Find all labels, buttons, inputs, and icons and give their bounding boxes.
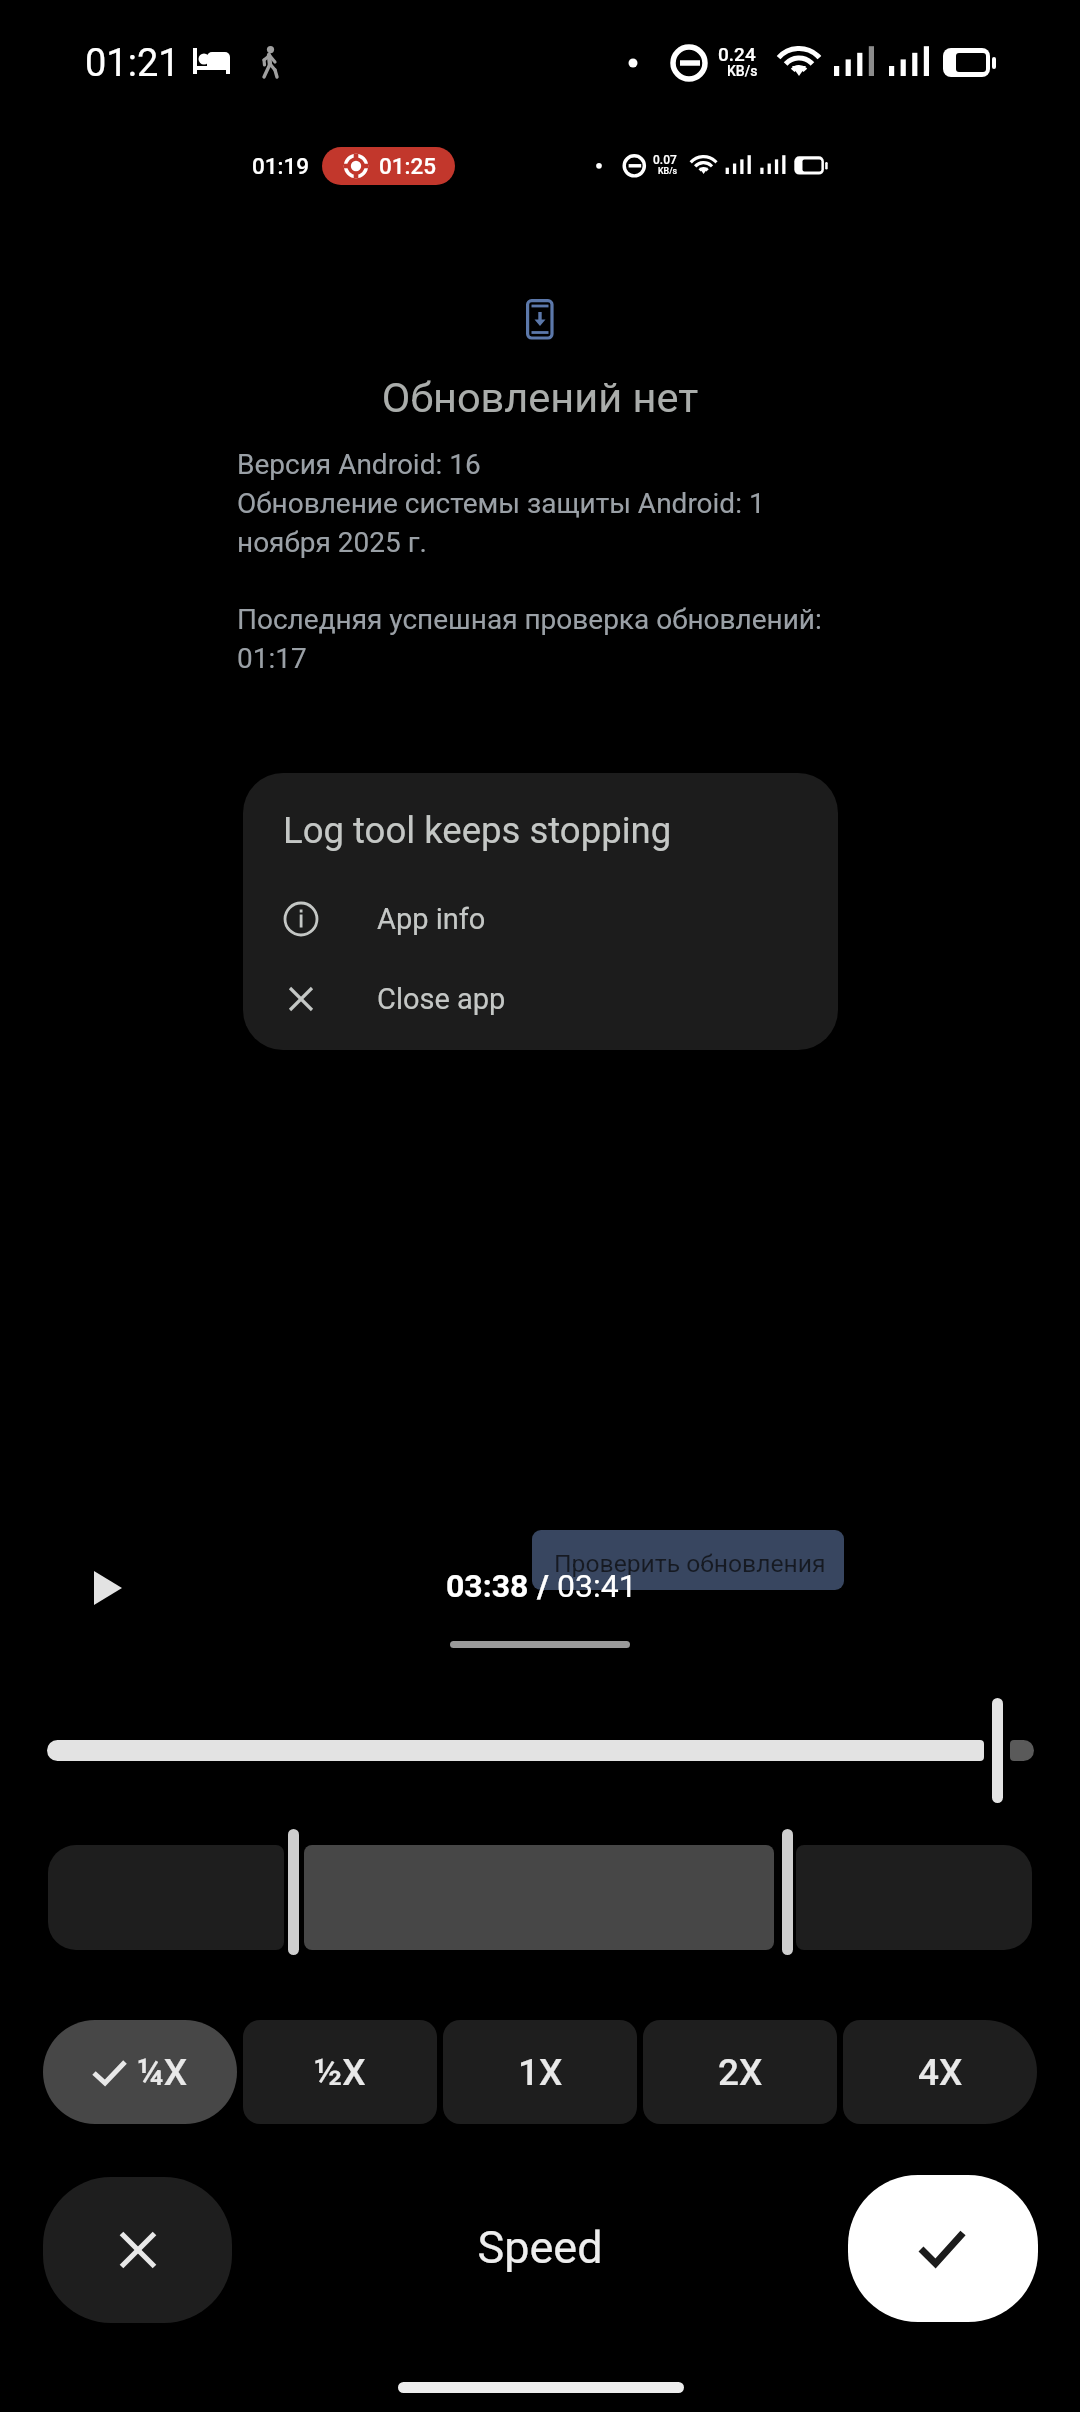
staticText: Log tool keeps stopping bbox=[283, 809, 672, 852]
button[interactable]: Clip head bbox=[48, 1845, 284, 1950]
button[interactable]: 2X bbox=[643, 2020, 837, 2124]
button[interactable]: Done bbox=[848, 2175, 1038, 2322]
button[interactable]: ½X bbox=[243, 2020, 437, 2124]
button[interactable]: 1X bbox=[443, 2020, 637, 2124]
button[interactable]: Clip tail bbox=[796, 1845, 1032, 1950]
staticText: KB/s bbox=[658, 166, 678, 176]
button[interactable]: Play bbox=[68, 1548, 148, 1628]
staticText: 01:21 bbox=[85, 41, 180, 86]
staticText: 2X bbox=[718, 2051, 763, 2094]
staticText: 03:41 bbox=[557, 1567, 637, 1605]
button[interactable]: App info bbox=[243, 879, 838, 959]
staticText: ½X bbox=[314, 2051, 366, 2094]
button[interactable]: ¼X bbox=[43, 2020, 237, 2124]
button[interactable]: Screen recording bbox=[322, 147, 455, 185]
staticText: / bbox=[529, 1567, 557, 1605]
button[interactable]: Log tool keeps stopping bbox=[243, 773, 838, 1050]
button[interactable]: Trim start bbox=[288, 1829, 299, 1955]
staticText: Проверить обновления bbox=[554, 1549, 826, 1578]
staticText: KB/s bbox=[727, 63, 758, 79]
button[interactable]: Проверить обновления bbox=[532, 1530, 844, 1590]
staticText: 4X bbox=[918, 2051, 963, 2094]
staticText: 01:19 bbox=[252, 153, 310, 179]
staticText: 0.07 bbox=[653, 153, 677, 167]
staticText: App info bbox=[377, 902, 486, 936]
staticText: ¼X bbox=[137, 2051, 188, 2094]
staticText: Close app bbox=[377, 982, 506, 1016]
staticText: Обновлений нет bbox=[0, 373, 1080, 422]
staticText: 1X bbox=[518, 2051, 563, 2094]
staticText: Последняя успешная проверка обновлений: … bbox=[237, 603, 837, 675]
button[interactable]: 4X bbox=[843, 2020, 1037, 2124]
staticText: Speed bbox=[0, 2221, 1080, 2274]
button[interactable]: Close app bbox=[243, 959, 838, 1039]
staticText: 01:25 bbox=[379, 153, 437, 179]
staticText: 03:38 bbox=[446, 1567, 529, 1605]
staticText: Версия Android: 16 Обновление системы за… bbox=[237, 448, 837, 559]
staticText: 0.24 bbox=[718, 43, 756, 65]
button[interactable]: Cancel bbox=[43, 2177, 232, 2323]
button[interactable]: Trim end bbox=[782, 1829, 793, 1955]
